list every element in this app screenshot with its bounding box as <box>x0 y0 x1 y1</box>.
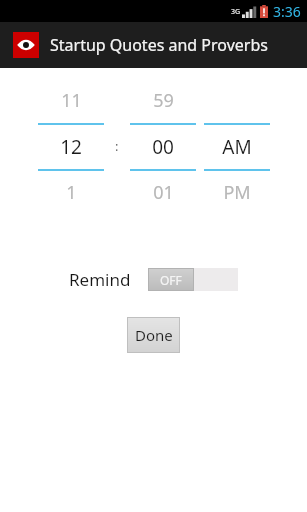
staticText: Startup Quotes and Proverbs <box>50 34 268 56</box>
button[interactable]: Hour <box>38 78 104 213</box>
staticText: 00 <box>152 134 174 160</box>
staticText: 3:36 <box>273 2 301 21</box>
staticText: 12 <box>60 134 82 160</box>
staticText: AM <box>222 134 252 160</box>
staticText: Done <box>135 325 173 345</box>
staticText: : <box>115 137 119 155</box>
other: App icon <box>13 32 39 58</box>
button[interactable]: Minute <box>130 78 196 213</box>
staticText: 11 <box>61 88 82 113</box>
staticText: 01 <box>153 180 174 205</box>
staticText: OFF <box>160 272 182 288</box>
staticText: 1 <box>66 180 77 205</box>
button[interactable]: Done <box>128 318 179 352</box>
staticText: 3G <box>231 7 241 17</box>
button[interactable]: Remind toggle, off <box>148 268 238 291</box>
staticText: PM <box>223 180 251 205</box>
staticText: Remind <box>69 268 131 291</box>
staticText: 59 <box>153 88 174 113</box>
button[interactable]: AM PM <box>204 78 270 213</box>
